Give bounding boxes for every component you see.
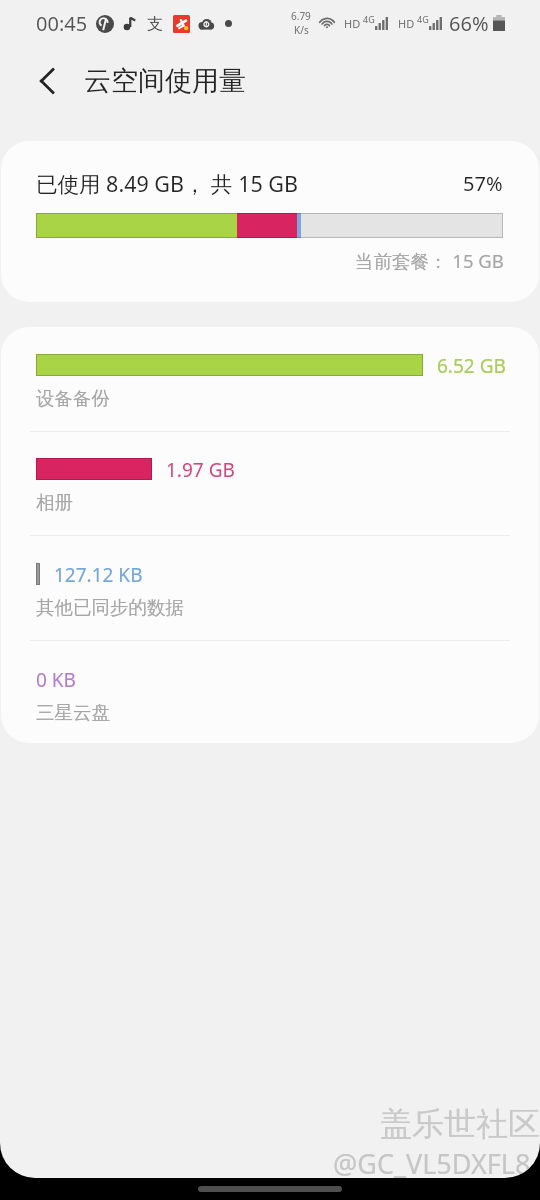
staticText: 盖乐世社区 (380, 1104, 540, 1144)
staticText: 当前套餐： 15 GB (355, 248, 504, 273)
staticText: 其他已同步的数据 (36, 596, 184, 619)
staticText: 6.79 (291, 9, 311, 23)
staticText: 相册 (36, 491, 73, 514)
staticText: HD (344, 16, 361, 31)
staticText: 1.97 GB (166, 457, 235, 483)
button[interactable]: 127.12 KB (1, 551, 539, 627)
button[interactable]: 0 KB (1, 656, 539, 732)
staticText: 三星云盘 (36, 701, 110, 724)
button[interactable]: 已使用 8.49 GB， 共 15 GB (1, 141, 539, 302)
staticText: 6.52 GB (437, 353, 506, 379)
staticText: 0 KB (36, 667, 76, 693)
staticText: 4G (417, 13, 429, 25)
staticText: K/s (294, 23, 309, 37)
staticText: 云空间使用量 (84, 64, 246, 98)
staticText: 127.12 KB (54, 562, 143, 588)
staticText: 4G (363, 13, 375, 25)
staticText: 已使用 8.49 GB， 共 15 GB (36, 169, 298, 198)
button[interactable]: 6.52 GB (1, 342, 539, 418)
button[interactable]: 1.97 GB (1, 446, 539, 522)
staticText: 66% (449, 10, 489, 37)
staticText: 57% (463, 170, 503, 197)
staticText: 设备备份 (36, 387, 110, 410)
staticText: HD (398, 16, 415, 31)
staticText: @GC_VL5DXFL8 (333, 1145, 531, 1178)
staticText: 00:45 (36, 10, 88, 37)
staticText: 支 (147, 14, 163, 34)
button[interactable]: Back (23, 57, 71, 105)
